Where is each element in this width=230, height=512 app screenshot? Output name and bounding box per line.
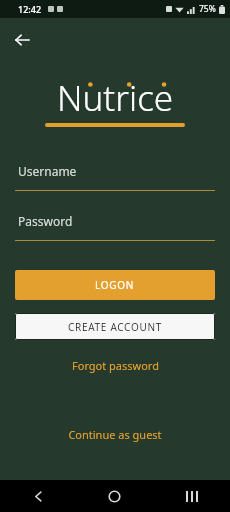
button[interactable]: Username [15, 163, 215, 191]
staticText: Username [18, 163, 77, 179]
staticText: Forgot password [72, 358, 159, 373]
staticText: Password [18, 213, 73, 229]
staticText: LOGON [95, 278, 135, 292]
button[interactable]: Back [6, 24, 38, 56]
button[interactable]: LOGON [15, 270, 215, 300]
staticText: 12:42 [18, 3, 42, 15]
staticText: Continue as guest [68, 427, 162, 442]
button[interactable]: Password [15, 213, 215, 241]
button[interactable]: Recents [153, 480, 230, 512]
button[interactable]: CREATE ACCOUNT [15, 313, 215, 340]
staticText: Nutrice [57, 74, 174, 122]
button[interactable]: Back [0, 480, 76, 512]
staticText: 75% [199, 3, 216, 15]
button[interactable]: Continue as guest [56, 423, 174, 446]
button[interactable]: Home [76, 480, 153, 512]
button[interactable]: Forgot password [60, 354, 171, 377]
staticText: CREATE ACCOUNT [68, 320, 163, 334]
